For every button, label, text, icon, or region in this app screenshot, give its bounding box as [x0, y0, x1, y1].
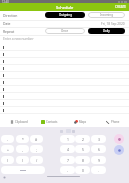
button[interactable]: Contacts [40, 119, 59, 125]
staticText: * [22, 137, 24, 142]
button[interactable]: 5 [75, 145, 90, 153]
staticText: Phone [111, 120, 120, 124]
button[interactable]: CREATE [113, 4, 129, 10]
button[interactable]: Incoming [88, 12, 125, 18]
staticText: . [98, 168, 99, 173]
staticText: + [7, 147, 9, 152]
button[interactable]: - [60, 166, 75, 174]
button[interactable] [0, 58, 129, 65]
staticText: 9 [98, 158, 100, 163]
staticText: 2 [82, 137, 84, 142]
button[interactable]: Phone [105, 119, 121, 125]
staticText: CREATE [115, 5, 127, 9]
staticText: Direction [3, 13, 18, 18]
button[interactable]: - [1, 135, 14, 143]
staticText: Date [3, 21, 11, 26]
staticText: ( [7, 158, 9, 163]
button[interactable]: 4 [60, 145, 75, 153]
staticText: , [22, 147, 23, 152]
button[interactable]: # [30, 135, 43, 143]
staticText: 6 [98, 147, 100, 152]
staticText: Maps [79, 120, 87, 124]
button[interactable]: Outgoing [45, 12, 85, 18]
staticText: 5 [82, 147, 84, 152]
button[interactable] [0, 107, 129, 114]
button[interactable]: 3 [91, 135, 106, 143]
staticText: Once [61, 29, 69, 33]
staticText: 1 [67, 137, 69, 142]
button[interactable]: * [16, 135, 29, 143]
button[interactable]: Direction [0, 11, 129, 19]
button[interactable]: , [16, 145, 29, 153]
staticText: Outgoing [59, 13, 72, 17]
staticText: 7 [67, 158, 69, 163]
button[interactable]: / [30, 156, 43, 164]
button[interactable]: + [1, 145, 14, 153]
staticText: ; [36, 147, 37, 152]
button[interactable]: Enter [114, 145, 124, 155]
button[interactable]: 7 [60, 156, 75, 164]
button[interactable] [0, 72, 129, 79]
staticText: - [7, 137, 9, 142]
staticText: Clipboard [15, 120, 28, 124]
button[interactable]: Daily [88, 28, 125, 34]
staticText: Schedule [56, 5, 74, 10]
staticText: / [36, 158, 38, 163]
button[interactable]: ( [1, 156, 14, 164]
button[interactable]: Date [0, 20, 129, 27]
button[interactable]: Clipboard [9, 119, 29, 125]
staticText: Contacts [46, 120, 58, 124]
button[interactable] [0, 93, 129, 100]
button[interactable]: 0 [75, 166, 90, 174]
staticText: Daily [103, 29, 110, 33]
staticText: 8 [82, 158, 84, 163]
button[interactable]: 1 [60, 135, 75, 143]
button[interactable] [0, 86, 129, 93]
button[interactable] [1, 166, 45, 174]
staticText: ) [22, 158, 24, 163]
button[interactable]: Maps [73, 119, 88, 125]
button[interactable] [0, 51, 129, 58]
staticText: Incoming [100, 13, 113, 17]
button[interactable]: 8 [75, 156, 90, 164]
staticText: # [35, 137, 38, 142]
button[interactable]: Backspace [114, 134, 124, 144]
staticText: - [67, 168, 69, 173]
staticText: Enter a new number [3, 37, 34, 41]
staticText: Fri, 18 Sep 2020 [101, 22, 125, 26]
button[interactable]: 2 [75, 135, 90, 143]
button[interactable] [0, 44, 129, 51]
button[interactable] [0, 65, 129, 72]
button[interactable]: Enter a new number [0, 35, 129, 43]
button[interactable] [0, 79, 129, 86]
staticText: Repeat [3, 29, 15, 34]
button[interactable]: 9 [91, 156, 106, 164]
staticText: 3 [98, 137, 100, 142]
button[interactable]: Repeat [0, 27, 129, 35]
staticText: 4 [67, 147, 69, 152]
staticText: 0 [82, 168, 84, 173]
button[interactable]: . [91, 166, 106, 174]
staticText: 12:40 [2, 0, 9, 3]
button[interactable]: ; [30, 145, 43, 153]
button[interactable]: 6 [91, 145, 106, 153]
button[interactable] [0, 100, 129, 107]
button[interactable]: Voice input [3, 176, 6, 179]
button[interactable]: Once [45, 28, 85, 34]
button[interactable]: ) [16, 156, 29, 164]
